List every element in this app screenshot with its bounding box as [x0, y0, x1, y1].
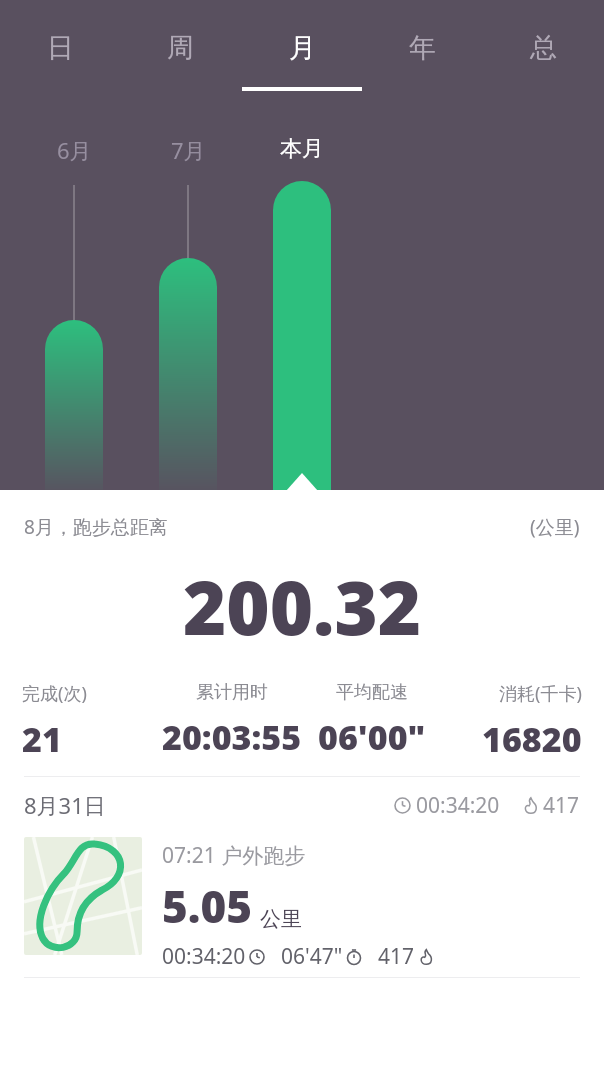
- staticText: 200.32: [183, 556, 422, 657]
- button[interactable]: 完成(次): [22, 681, 162, 762]
- other: Duration: [249, 949, 265, 965]
- staticText: 07:21 户外跑步: [162, 841, 306, 870]
- staticText: 本月: [280, 135, 324, 163]
- button[interactable]: 平均配速: [302, 681, 442, 760]
- other: Calories: [418, 949, 434, 965]
- staticText: 20:03:55: [162, 714, 302, 760]
- button[interactable]: 日: [0, 0, 120, 105]
- staticText: 完成(次): [22, 681, 87, 706]
- button[interactable]: 月: [241, 0, 362, 105]
- staticText: 平均配速: [336, 681, 408, 704]
- staticText: (公里): [530, 514, 580, 540]
- button[interactable]: 消耗(千卡): [442, 681, 582, 762]
- staticText: 7月: [171, 135, 206, 165]
- staticText: 06'00": [318, 714, 426, 760]
- staticText: 00:34:20: [416, 791, 500, 820]
- staticText: 月: [289, 31, 316, 65]
- button[interactable]: 累计用时: [162, 681, 302, 760]
- staticText: 417: [378, 942, 415, 971]
- button[interactable]: 07:21 户外跑步: [0, 833, 604, 971]
- staticText: 总: [530, 31, 557, 65]
- staticText: 16820: [482, 716, 582, 762]
- staticText: 06'47": [281, 942, 343, 971]
- staticText: 公里: [260, 906, 302, 932]
- staticText: 年: [409, 31, 436, 65]
- staticText: 8月，跑步总距离: [24, 514, 168, 540]
- other: Pace: [346, 949, 362, 965]
- staticText: 日: [47, 31, 74, 65]
- staticText: 00:34:20: [162, 942, 246, 971]
- staticText: 417: [543, 791, 580, 820]
- staticText: 5.05: [162, 876, 253, 936]
- button[interactable]: 总: [483, 0, 604, 105]
- other: Calories: [522, 797, 539, 814]
- other: Duration: [394, 797, 411, 814]
- staticText: 周: [167, 31, 194, 65]
- button[interactable]: 年: [362, 0, 483, 105]
- button[interactable]: 8月31日: [0, 777, 604, 833]
- staticText: 消耗(千卡): [499, 681, 582, 706]
- staticText: 6月: [57, 135, 92, 165]
- staticText: 累计用时: [196, 681, 268, 704]
- button[interactable]: 周: [120, 0, 241, 105]
- staticText: 8月31日: [24, 790, 106, 820]
- staticText: 21: [22, 716, 62, 762]
